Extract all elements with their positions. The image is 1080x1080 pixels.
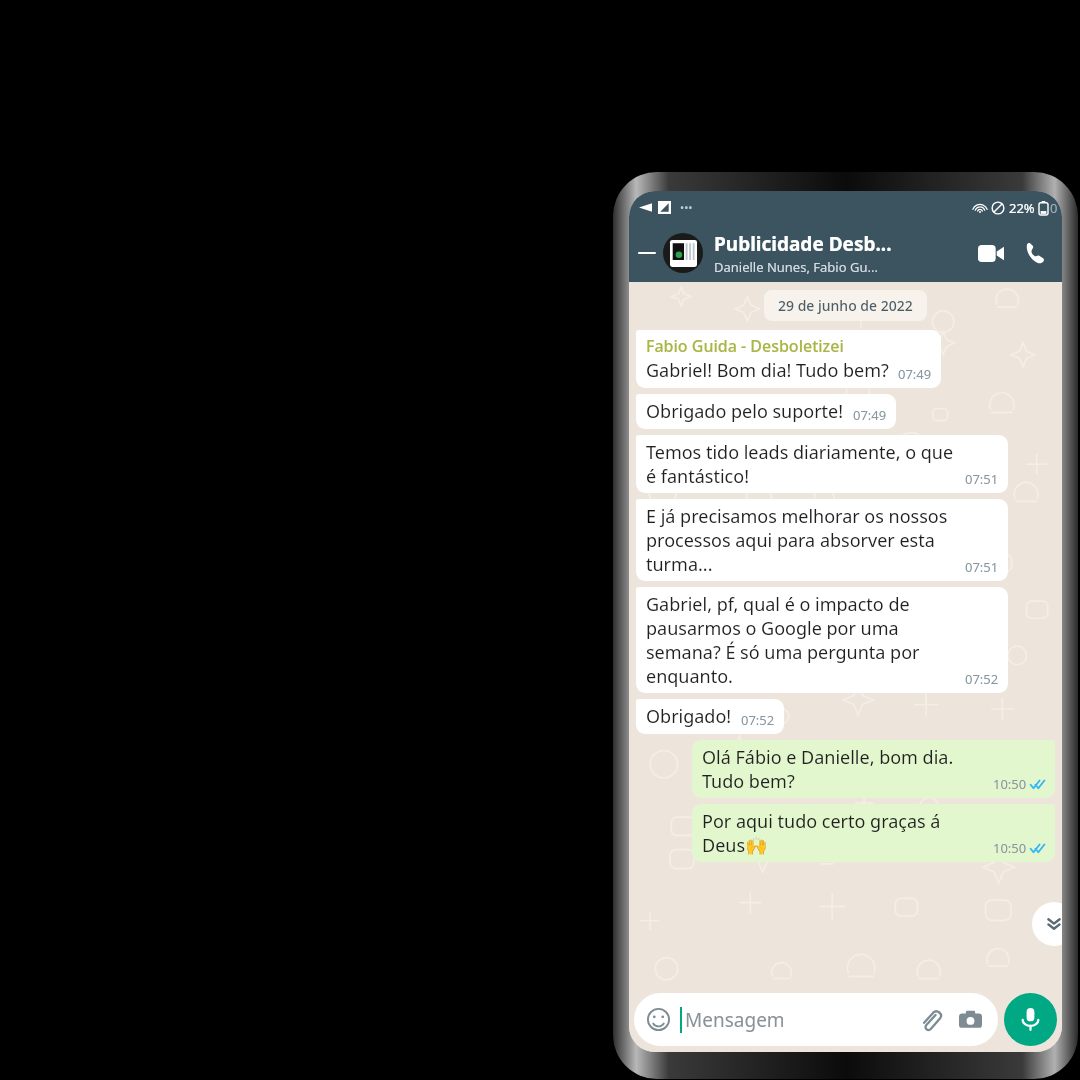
- staticText: 07:51: [965, 470, 999, 488]
- staticText: Olá Fábio e Danielle, bom dia. Tudo bem?: [702, 745, 984, 793]
- staticText: Danielle Nunes, Fabio Gu...: [714, 258, 878, 276]
- staticText: 29 de junho de 2022: [778, 296, 913, 315]
- button[interactable]: Scroll to bottom: [1032, 902, 1062, 946]
- staticText: Gabriel, pf, qual é o impacto de pausarm…: [646, 592, 956, 688]
- staticText: •••: [680, 200, 693, 215]
- staticText: Temos tido leads diariamente, o que é fa…: [646, 440, 956, 488]
- button[interactable]: Temos tido leads diariamente, o que é fa…: [636, 435, 1008, 493]
- staticText: Por aqui tudo certo graças á Deus🙌: [702, 809, 984, 857]
- button[interactable]: Video call: [972, 234, 1010, 272]
- staticText: Mensagem: [685, 1007, 915, 1033]
- button[interactable]: Attach: [915, 1005, 945, 1035]
- staticText: 07:52: [741, 711, 775, 729]
- staticText: Obrigado!: [646, 704, 732, 729]
- staticText: 07:49: [853, 406, 887, 424]
- staticText: E já precisamos melhorar os nossos proce…: [646, 504, 956, 576]
- staticText: Obrigado pelo suporte!: [646, 399, 844, 424]
- button[interactable]: Voice message: [1004, 993, 1057, 1046]
- button[interactable]: Olá Fábio e Danielle, bom dia. Tudo bem?: [692, 740, 1055, 798]
- staticText: 0: [1050, 199, 1058, 217]
- staticText: Gabriel! Bom dia! Tudo bem?: [646, 358, 889, 383]
- staticText: 07:52: [965, 670, 999, 688]
- staticText: Fabio Guida - Desboletizei: [646, 335, 844, 357]
- button[interactable]: Group photo: [663, 233, 703, 273]
- button[interactable]: Gabriel, pf, qual é o impacto de pausarm…: [636, 587, 1008, 693]
- button[interactable]: Back: [633, 239, 661, 267]
- staticText: Publicidade Desb...: [714, 231, 892, 257]
- button[interactable]: Voice call: [1016, 234, 1054, 272]
- button[interactable]: Camera: [955, 1005, 985, 1035]
- button[interactable]: E já precisamos melhorar os nossos proce…: [636, 499, 1008, 581]
- staticText: 10:50: [993, 839, 1027, 857]
- staticText: 22%: [1009, 199, 1035, 217]
- staticText: 07:49: [898, 365, 932, 383]
- button[interactable]: Obrigado pelo suporte!: [636, 394, 896, 429]
- button[interactable]: Obrigado!: [636, 699, 784, 734]
- staticText: 07:51: [965, 558, 999, 576]
- button[interactable]: Por aqui tudo certo graças á Deus🙌: [692, 804, 1055, 862]
- button[interactable]: 29 de junho de 2022: [778, 296, 913, 315]
- button[interactable]: Mensagem: [634, 993, 998, 1046]
- staticText: 10:50: [993, 775, 1027, 793]
- button[interactable]: Fabio Guida - Desboletizei: [636, 330, 941, 388]
